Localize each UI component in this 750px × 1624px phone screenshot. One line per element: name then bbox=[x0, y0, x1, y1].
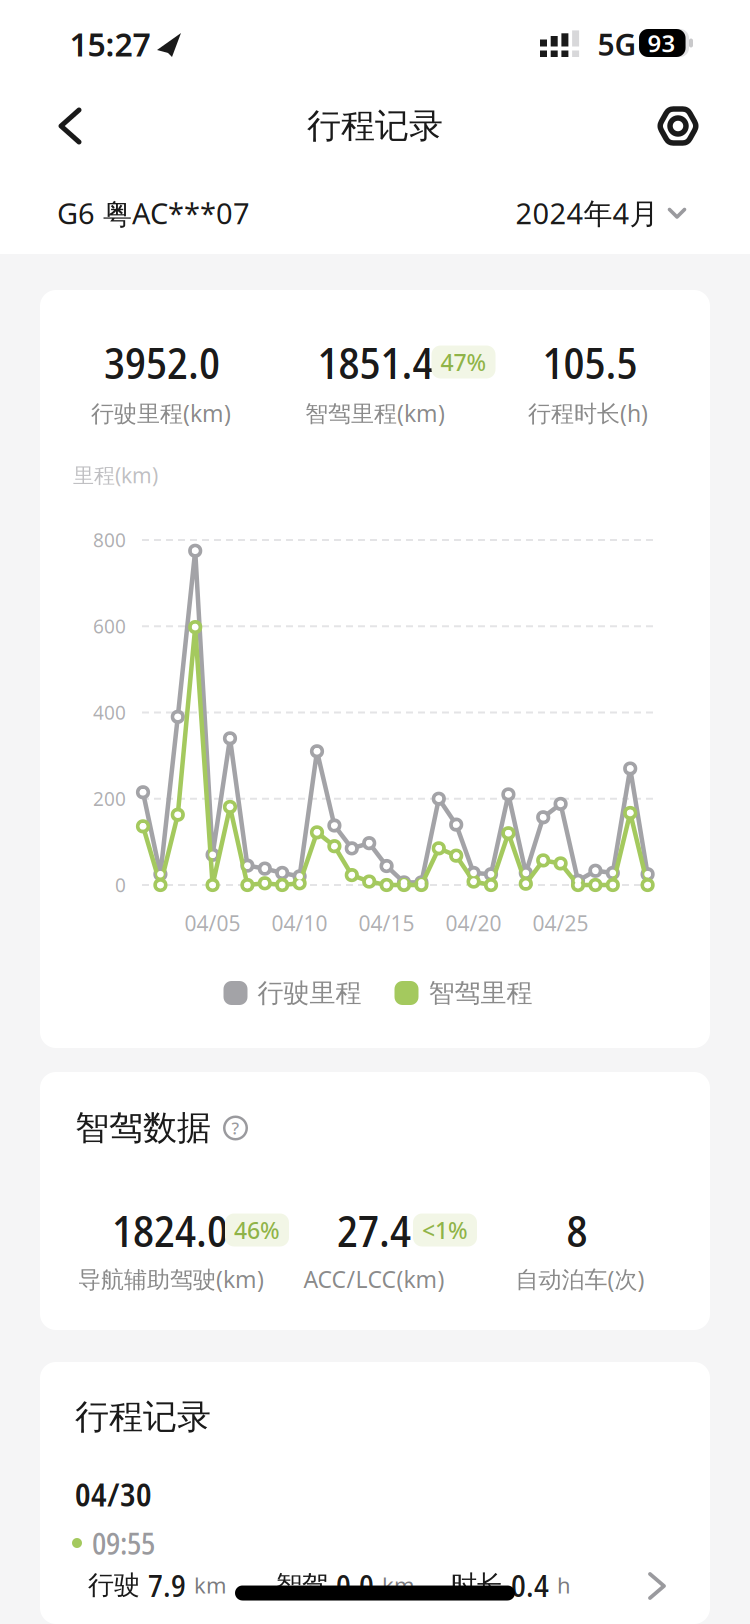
button[interactable]: 行驶 bbox=[40, 1555, 710, 1615]
staticText: 自动泊车(次) bbox=[515, 1264, 644, 1294]
staticText: 行程时长(h) bbox=[528, 398, 648, 428]
staticText: 47% bbox=[440, 347, 486, 377]
staticText: 智驾数据 bbox=[75, 1107, 211, 1149]
staticText: 46% bbox=[234, 1215, 280, 1245]
staticText: 3952.0 bbox=[104, 333, 220, 391]
staticText: 27.4 bbox=[337, 1201, 411, 1259]
staticText: 15:27 bbox=[69, 23, 150, 65]
staticText: 04/15 bbox=[359, 909, 415, 937]
staticText: 200 bbox=[93, 786, 126, 811]
staticText: 1851.4 bbox=[317, 333, 433, 391]
button[interactable]: About smart driving data bbox=[223, 1115, 248, 1140]
staticText: 行驶里程 bbox=[257, 977, 361, 1009]
staticText: <1% bbox=[422, 1215, 468, 1245]
button[interactable]: 2024年4月 bbox=[515, 194, 686, 232]
staticText: 智驾里程(km) bbox=[305, 398, 445, 428]
staticText: 导航辅助驾驶(km) bbox=[78, 1264, 264, 1294]
staticText: 04/10 bbox=[272, 909, 328, 937]
staticText: 04/20 bbox=[446, 909, 502, 937]
staticText: 09:55 bbox=[92, 1523, 155, 1563]
staticText: G6 粤AC***07 bbox=[57, 194, 250, 232]
staticText: 智驾里程 bbox=[428, 977, 532, 1009]
staticText: 5G bbox=[597, 24, 636, 64]
staticText: 93 bbox=[647, 27, 675, 59]
staticText: 04/05 bbox=[185, 909, 241, 937]
staticText: ACC/LCC(km) bbox=[303, 1264, 444, 1294]
staticText: 2024年4月 bbox=[515, 194, 658, 232]
staticText: 105.5 bbox=[542, 333, 637, 391]
staticText: 0 bbox=[115, 872, 126, 898]
staticText: 行程记录 bbox=[75, 1396, 211, 1438]
staticText: 7.9 bbox=[148, 1564, 186, 1606]
staticText: 行程记录 bbox=[307, 105, 443, 147]
staticText: 400 bbox=[93, 700, 126, 725]
button[interactable]: Settings bbox=[646, 94, 710, 158]
staticText: 04/25 bbox=[533, 909, 589, 937]
staticText: h bbox=[557, 1570, 571, 1600]
staticText: 8 bbox=[566, 1201, 587, 1259]
staticText: 800 bbox=[93, 527, 126, 553]
staticText: 0.4 bbox=[511, 1564, 549, 1606]
staticText: 04/30 bbox=[75, 1473, 152, 1515]
staticText: 时长 bbox=[451, 1569, 503, 1601]
button[interactable]: Back bbox=[43, 92, 97, 160]
staticText: 智驾 bbox=[276, 1569, 328, 1601]
staticText: km bbox=[194, 1570, 227, 1600]
staticText: 600 bbox=[93, 614, 126, 639]
staticText: 行驶里程(km) bbox=[91, 398, 231, 428]
staticText: km bbox=[382, 1570, 415, 1600]
staticText: 1824.0 bbox=[112, 1201, 228, 1259]
staticText: 里程(km) bbox=[73, 461, 158, 489]
staticText: ? bbox=[231, 1117, 239, 1139]
staticText: 行驶 bbox=[88, 1569, 140, 1601]
staticText: 0.0 bbox=[336, 1564, 374, 1606]
